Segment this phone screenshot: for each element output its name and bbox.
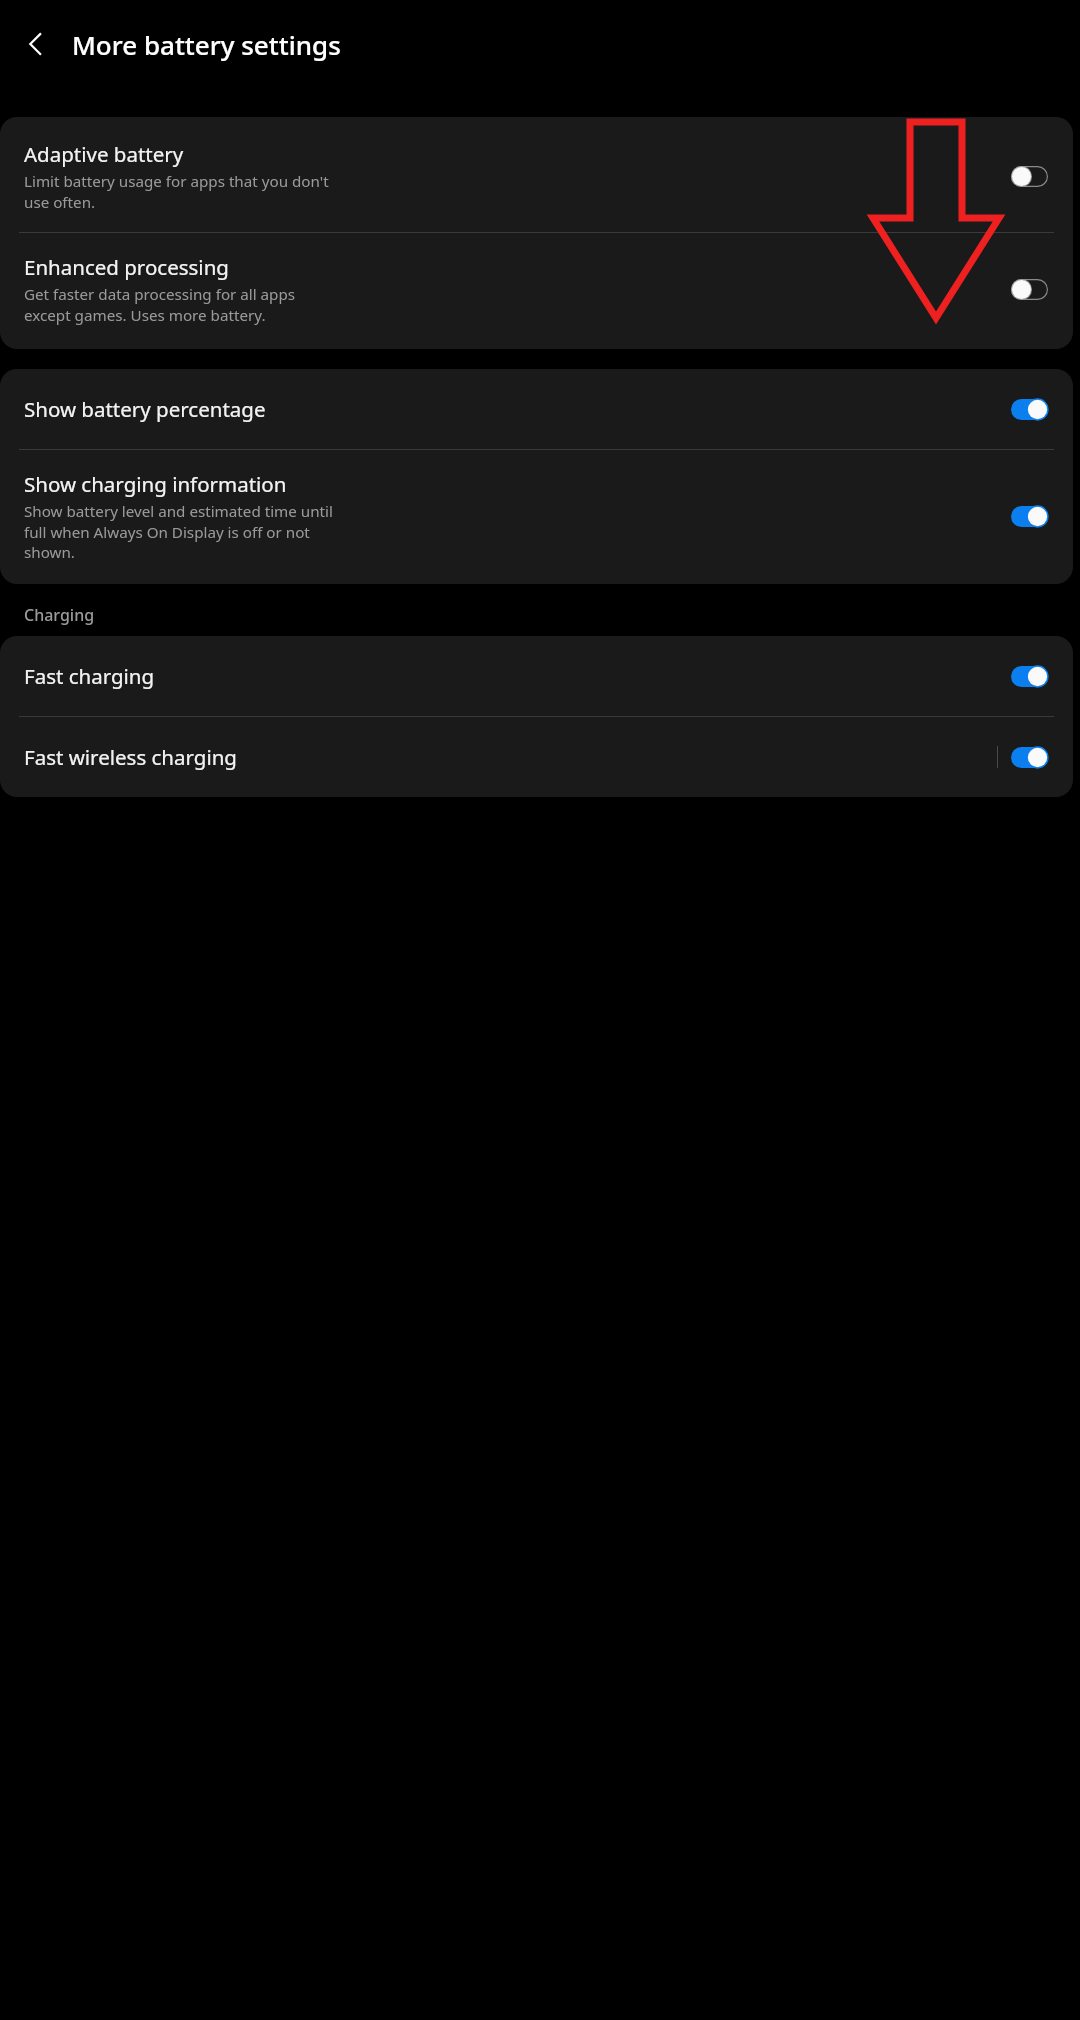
staticText: Adaptive battery	[24, 140, 184, 168]
staticText: Fast wireless charging	[24, 743, 237, 771]
button[interactable]: Back	[10, 18, 62, 70]
button[interactable]: On	[1011, 399, 1048, 420]
staticText: Show battery level and estimated time un…	[24, 501, 333, 562]
button[interactable]: On	[1011, 666, 1048, 687]
button[interactable]: Fast wireless charging	[0, 717, 1073, 797]
button[interactable]: Adaptive battery	[0, 117, 1073, 232]
staticText: Limit battery usage for apps that you do…	[24, 171, 329, 212]
button[interactable]: Off	[1011, 279, 1048, 300]
button[interactable]: On	[1011, 747, 1048, 768]
staticText: Get faster data processing for all apps …	[24, 284, 296, 325]
button[interactable]: Show charging information	[0, 450, 1073, 584]
button[interactable]: Fast charging	[0, 636, 1073, 716]
staticText: Charging	[24, 604, 95, 626]
staticText: Fast charging	[24, 662, 155, 690]
button[interactable]: Off	[1011, 166, 1048, 187]
button[interactable]: Enhanced processing	[0, 233, 1073, 349]
button[interactable]: On	[1011, 506, 1048, 527]
staticText: Enhanced processing	[24, 253, 229, 281]
staticText: Show charging information	[24, 470, 287, 498]
staticText: More battery settings	[72, 27, 341, 62]
button[interactable]: Show battery percentage	[0, 369, 1073, 449]
staticText: Show battery percentage	[24, 395, 266, 423]
